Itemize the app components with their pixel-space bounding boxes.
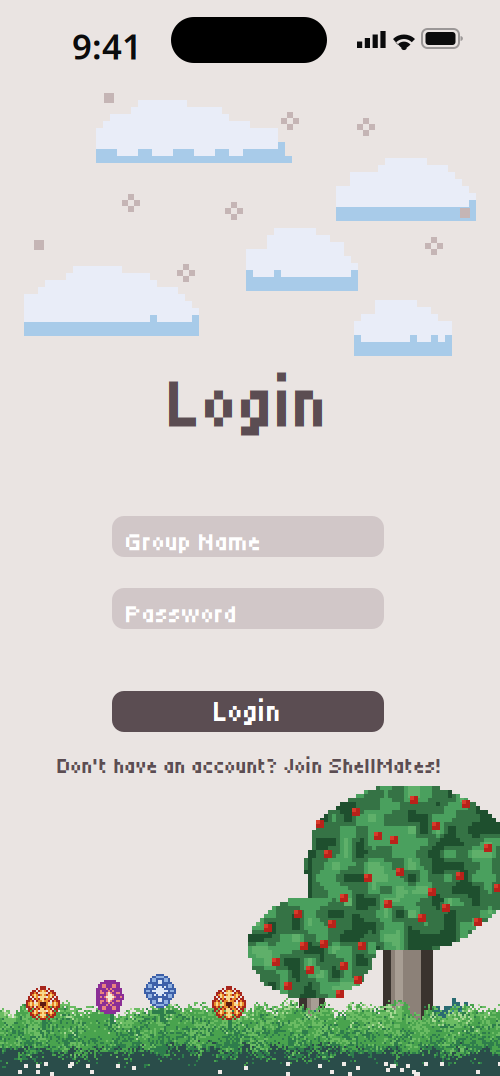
button[interactable]: Password (112, 588, 384, 629)
staticText: Group Name (126, 527, 262, 557)
button[interactable]: Don't have an account? Join ShellMates! (40, 754, 460, 778)
staticText: Login (169, 363, 331, 444)
staticText: Don't have an account? Join ShellMates! (57, 753, 442, 779)
button[interactable]: Group Name (112, 516, 384, 557)
staticText: Login (214, 694, 282, 729)
staticText: Password (126, 599, 238, 629)
staticText: 9:41 (72, 23, 142, 69)
button[interactable]: Login (112, 691, 384, 732)
